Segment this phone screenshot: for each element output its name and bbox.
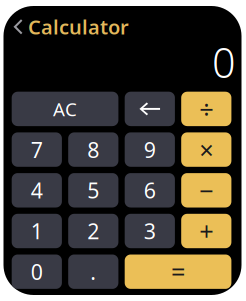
button[interactable]: − [181, 173, 231, 207]
button[interactable]: 6 [125, 173, 175, 207]
staticText: − [199, 173, 213, 207]
staticText: . [90, 257, 96, 286]
button[interactable]: 5 [68, 173, 118, 207]
button[interactable]: Delete [125, 92, 175, 126]
staticText: 4 [31, 176, 43, 204]
staticText: 0 [212, 34, 236, 89]
button[interactable]: 8 [68, 132, 118, 167]
staticText: 2 [87, 217, 99, 245]
staticText: 6 [144, 176, 156, 204]
button[interactable]: 4 [12, 173, 62, 207]
staticText: ÷ [199, 92, 213, 126]
staticText: 9 [144, 135, 156, 164]
button[interactable]: × [181, 132, 231, 167]
staticText: 1 [31, 217, 43, 245]
button[interactable]: + [181, 214, 231, 248]
button[interactable]: 1 [12, 214, 62, 248]
staticText: 0 [31, 257, 43, 286]
staticText: 5 [87, 176, 99, 204]
staticText: × [199, 133, 213, 166]
button[interactable]: AC [12, 92, 118, 126]
button[interactable]: Back to Calculator [3, 9, 137, 44]
staticText: 8 [87, 135, 99, 164]
staticText: + [199, 214, 213, 248]
button[interactable]: ÷ [181, 92, 231, 126]
staticText: AC [53, 96, 77, 121]
staticText: Calculator [28, 13, 129, 40]
button[interactable]: 7 [12, 132, 62, 167]
button[interactable]: 9 [125, 132, 175, 167]
staticText: = [171, 255, 185, 288]
button[interactable]: = [125, 254, 231, 289]
button[interactable]: 0 [12, 254, 62, 289]
staticText: 7 [31, 135, 43, 164]
staticText: 3 [144, 217, 156, 245]
button[interactable]: 3 [125, 214, 175, 248]
button[interactable]: 2 [68, 214, 118, 248]
button[interactable]: . [68, 254, 118, 289]
